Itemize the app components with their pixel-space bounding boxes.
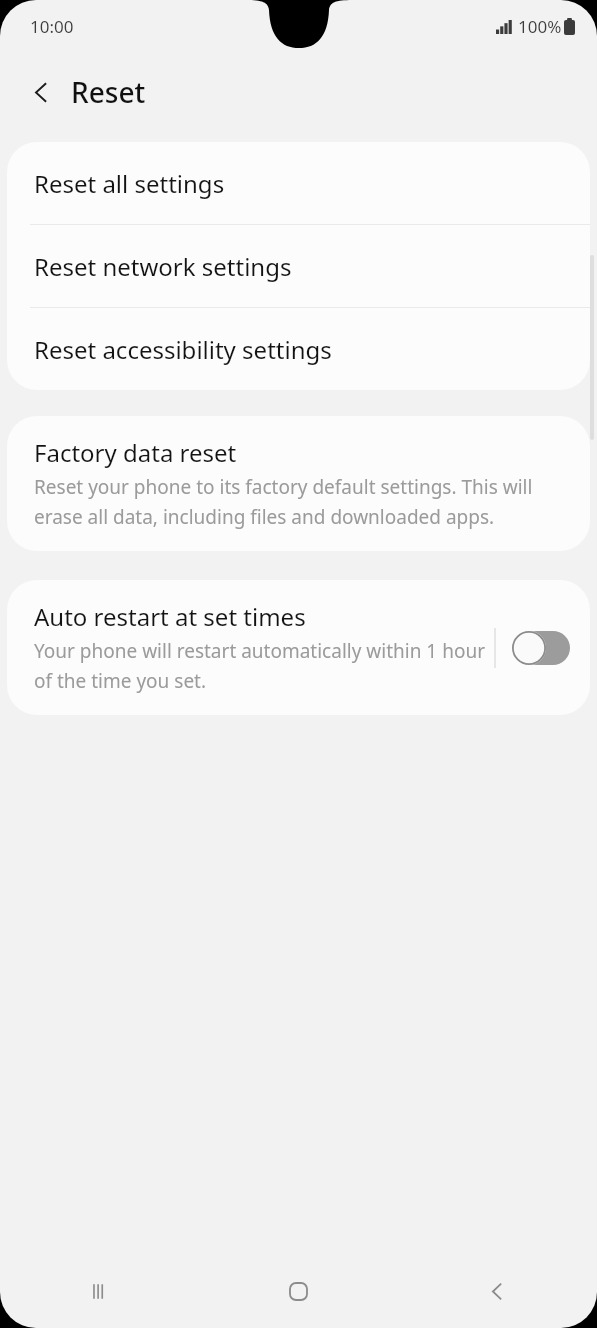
staticText: Your phone will restart automatically wi…: [34, 638, 488, 693]
button[interactable]: Reset all settings: [7, 142, 590, 224]
staticText: Reset: [71, 73, 146, 111]
button[interactable]: Recent apps: [0, 1254, 199, 1328]
button[interactable]: Home: [199, 1254, 398, 1328]
staticText: Auto restart at set times: [34, 600, 306, 633]
button[interactable]: Auto restart at set times, off: [510, 620, 572, 676]
staticText: 10:00: [30, 15, 74, 38]
button[interactable]: Factory data reset: [7, 416, 590, 551]
staticText: Factory data reset: [34, 436, 237, 469]
staticText: Reset your phone to its factory default …: [34, 474, 566, 529]
staticText: 100%: [518, 15, 562, 38]
button[interactable]: Back: [17, 68, 65, 116]
button[interactable]: Reset accessibility settings: [7, 308, 590, 390]
staticText: Reset network settings: [34, 250, 292, 283]
staticText: Reset all settings: [34, 167, 225, 200]
button[interactable]: Reset network settings: [7, 225, 590, 307]
button[interactable]: Back: [398, 1254, 597, 1328]
staticText: Reset accessibility settings: [34, 333, 332, 366]
button[interactable]: Auto restart at set times: [7, 580, 494, 715]
